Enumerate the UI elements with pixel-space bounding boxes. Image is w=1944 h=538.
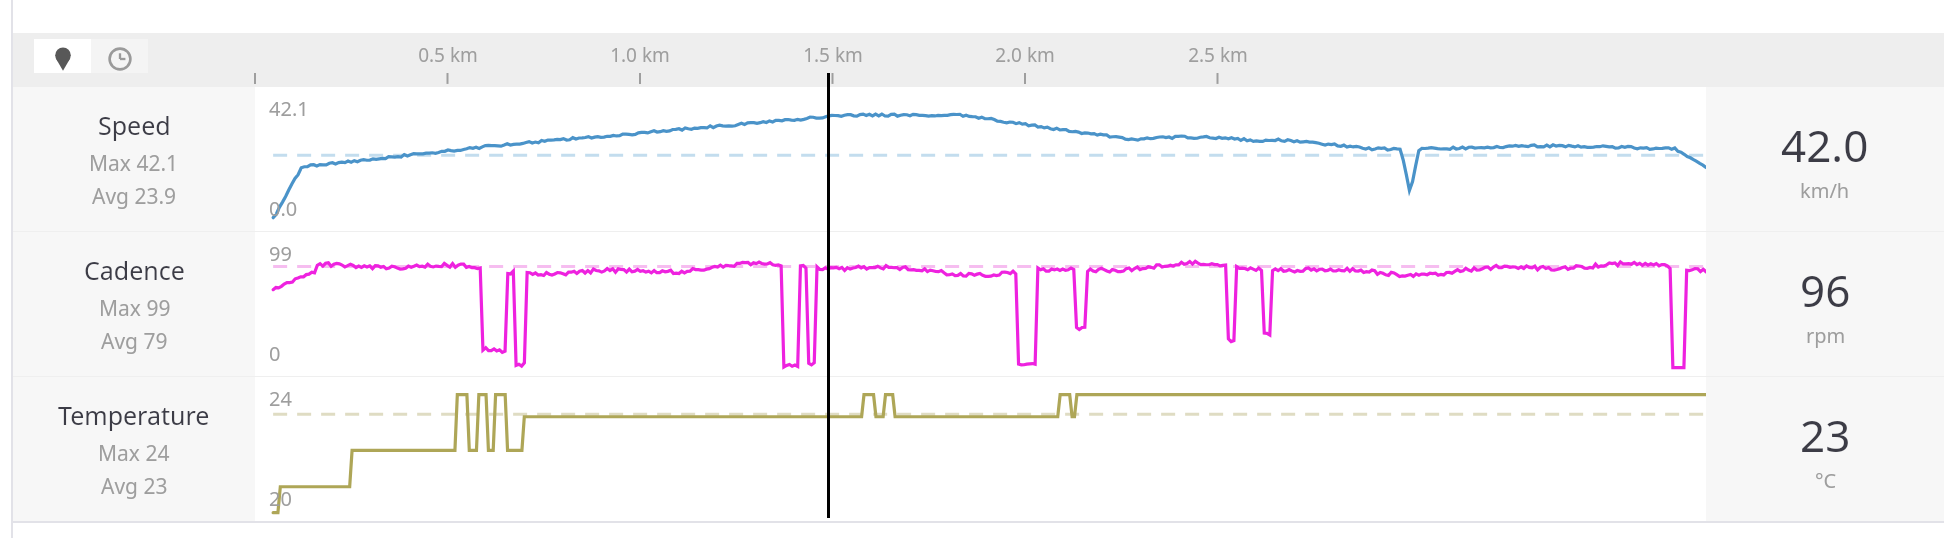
staticText: Max 24: [98, 439, 170, 468]
staticText: Max 99: [99, 294, 171, 323]
staticText: Avg 23: [101, 472, 168, 501]
button[interactable]: Temperature: [13, 377, 1944, 521]
staticText: rpm: [1806, 322, 1846, 349]
staticText: 0: [269, 340, 281, 367]
staticText: 0.0: [269, 195, 298, 222]
button[interactable]: Speed: [13, 87, 1944, 231]
staticText: 1.0 km: [580, 42, 700, 68]
button[interactable]: Show by distance: [34, 39, 91, 79]
staticText: Speed: [98, 108, 171, 142]
staticText: °C: [1815, 467, 1837, 494]
button[interactable]: Show by time: [91, 39, 148, 79]
staticText: 23: [1800, 405, 1851, 465]
staticText: 96: [1800, 260, 1851, 320]
staticText: 24: [269, 385, 292, 412]
staticText: 0.5 km: [388, 42, 508, 68]
staticText: Avg 23.9: [92, 182, 177, 211]
staticText: km/h: [1800, 177, 1850, 204]
staticText: 20: [269, 485, 292, 512]
button[interactable]: Cadence: [13, 232, 1944, 376]
staticText: 42.1: [269, 95, 309, 122]
staticText: Temperature: [58, 398, 210, 432]
staticText: Cadence: [84, 253, 185, 287]
staticText: 1.5 km: [773, 42, 893, 68]
staticText: 42.0: [1781, 115, 1869, 175]
staticText: Max 42.1: [89, 149, 179, 178]
staticText: 99: [269, 240, 292, 267]
staticText: 2.5 km: [1158, 42, 1278, 68]
staticText: 2.0 km: [965, 42, 1085, 68]
staticText: Avg 79: [101, 327, 168, 356]
